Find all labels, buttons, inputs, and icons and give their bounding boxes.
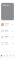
button[interactable] [1,28,14,34]
button[interactable]: Games [3,52,6,60]
button[interactable] [1,34,14,40]
button[interactable]: Apps [6,52,9,60]
button[interactable]: Arcade [9,52,12,60]
button[interactable] [1,21,14,28]
button[interactable] [1,40,14,47]
button[interactable]: Search [12,52,15,60]
button[interactable]: Today [0,52,3,60]
button[interactable] [1,3,14,20]
